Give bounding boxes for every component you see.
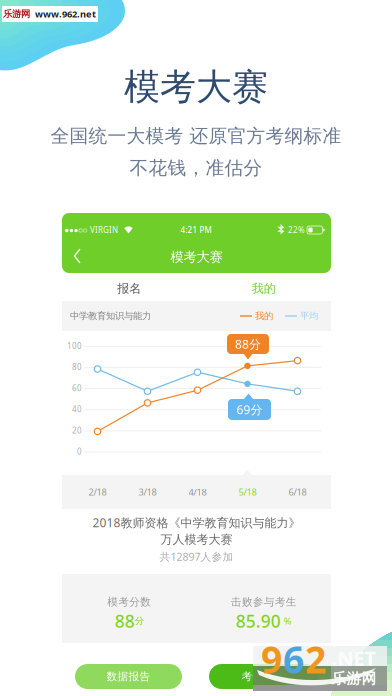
staticText: 报名 <box>117 281 141 296</box>
staticText: 2 <box>305 634 326 684</box>
staticText: % <box>284 615 292 627</box>
staticText: 乐游网 <box>3 8 30 20</box>
staticText: 85.90 <box>236 609 281 632</box>
staticText: 我的 <box>255 310 273 322</box>
button[interactable]: 3/18 <box>125 482 169 502</box>
staticText: 6 <box>283 634 304 684</box>
button[interactable]: 报名 <box>62 273 196 304</box>
staticText: 88分 <box>235 336 261 352</box>
staticText: 2018教师资格《中学教育知识与能力》 <box>92 514 300 530</box>
button[interactable]: 2/18 <box>75 482 119 502</box>
staticText: 模考大赛 <box>170 249 222 265</box>
staticText: 数据报告 <box>106 670 150 683</box>
staticText: 共12897人参加 <box>159 549 233 564</box>
staticText: 3/18 <box>138 486 156 498</box>
staticText: 平均 <box>300 310 318 322</box>
staticText: VIRGIN <box>90 225 118 235</box>
staticText: 2/18 <box>88 486 106 498</box>
button[interactable]: Back <box>68 243 88 269</box>
staticText: 分 <box>135 615 144 627</box>
staticText: 69分 <box>236 401 262 417</box>
staticText: 88 <box>115 609 135 632</box>
staticText: 全国统一大模考 还原官方考纲标准 <box>50 124 341 147</box>
button[interactable]: 5/18 <box>225 482 269 502</box>
button[interactable]: 4/18 <box>175 482 219 502</box>
staticText: 20 <box>72 425 82 436</box>
button[interactable]: 6/18 <box>275 482 319 502</box>
staticText: 6/18 <box>288 486 306 498</box>
staticText: 击败参与考生 <box>231 595 297 608</box>
staticText: 不花钱，准估分 <box>129 156 262 179</box>
staticText: 22% <box>288 225 305 235</box>
staticText: 0 <box>77 446 82 457</box>
button[interactable]: 我的 <box>196 273 331 304</box>
staticText: 考试解析 <box>241 670 285 683</box>
staticText: 乐游网 <box>331 669 376 687</box>
button[interactable]: 考试解析 <box>209 664 318 689</box>
staticText: 模考大赛 <box>124 65 268 109</box>
button[interactable]: 数据报告 <box>75 664 182 689</box>
staticText: 中学教育知识与能力 <box>70 310 151 322</box>
staticText: 万人模考大赛 <box>160 532 232 547</box>
staticText: 4/18 <box>188 486 206 498</box>
staticText: 40 <box>72 404 82 414</box>
staticText: 5/18 <box>238 486 256 498</box>
staticText: .NET <box>331 645 376 671</box>
staticText: 80 <box>72 362 82 372</box>
staticText: 9 <box>261 634 282 684</box>
staticText: 4:21 PM <box>180 225 211 235</box>
staticText: 模考分数 <box>107 595 151 608</box>
staticText: 100 <box>67 340 82 351</box>
staticText: www.962.net <box>35 8 96 20</box>
staticText: 60 <box>72 383 82 393</box>
staticText: 我的 <box>252 281 276 296</box>
